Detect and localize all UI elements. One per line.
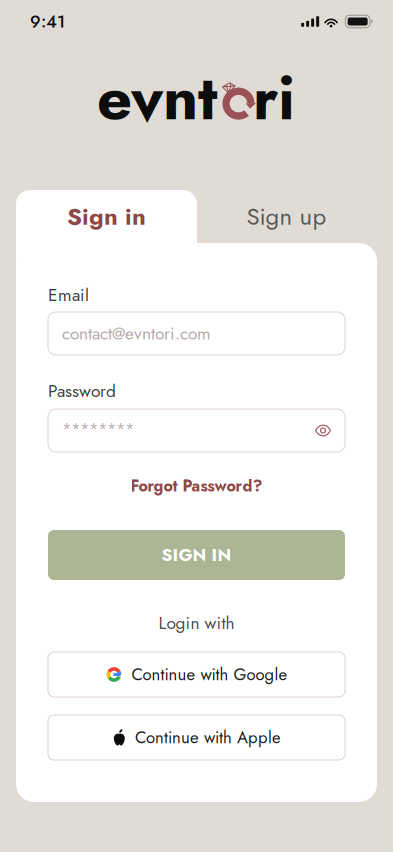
button[interactable]: Sign in [16,190,197,243]
staticText: SIGN IN [161,542,231,567]
staticText: Sign up [246,199,326,234]
button[interactable]: Forgot Password? [48,475,345,497]
button[interactable]: Sign up [196,190,377,243]
staticText: Login with [158,610,234,635]
staticText: Password [48,378,116,403]
button[interactable]: SIGN IN [48,530,345,580]
staticText: Forgot Password? [130,474,262,497]
staticText: evnt [97,54,218,142]
staticText: 9:41 [30,9,65,34]
staticText: ******** [62,418,134,441]
staticText: contact@evntori.com [62,321,211,346]
staticText: Sign in [67,199,146,234]
staticText: Email [48,282,89,307]
button[interactable]: Continue with Apple [48,715,345,760]
staticText: Continue with Apple [135,725,281,750]
staticText: ri [253,54,295,142]
button[interactable]: Show password [315,424,331,437]
staticText: Continue with Google [131,662,287,687]
button[interactable]: Continue with Google [48,652,345,697]
